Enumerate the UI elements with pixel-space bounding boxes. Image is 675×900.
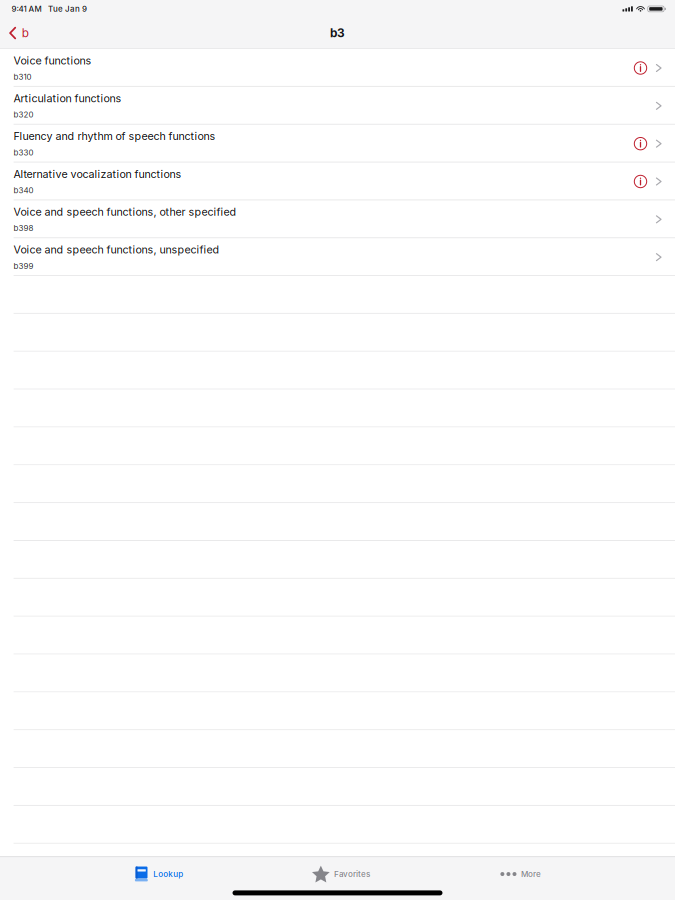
staticText: b3 (330, 26, 345, 40)
button[interactable]: Lookup (135, 866, 183, 881)
staticText: More (521, 869, 541, 879)
staticText: Articulation functions (14, 92, 122, 105)
button[interactable]: More (500, 869, 541, 879)
button[interactable]: Voice functions (0, 49, 675, 87)
staticText: b399 (14, 261, 34, 271)
button[interactable]: More information about Fluency and rhyth… (634, 136, 647, 150)
button[interactable]: b (0, 18, 37, 48)
button[interactable]: More information about Voice functions (634, 61, 647, 74)
staticText: b330 (14, 148, 34, 157)
staticText: Favorites (334, 869, 370, 879)
staticText: Voice functions (14, 54, 92, 67)
button[interactable]: Favorites (312, 866, 370, 882)
staticText: Lookup (153, 869, 183, 879)
staticText: b340 (14, 185, 34, 195)
staticText: Fluency and rhythm of speech functions (14, 130, 216, 143)
button[interactable]: Alternative vocalization functions (0, 163, 675, 200)
staticText: b310 (14, 72, 32, 82)
button[interactable]: Fluency and rhythm of speech functions (0, 125, 675, 163)
staticText: b (22, 26, 29, 40)
button[interactable]: Voice and speech functions, other specif… (0, 200, 675, 238)
button[interactable]: Voice and speech functions, unspecified (0, 238, 675, 276)
staticText: b320 (14, 110, 34, 119)
staticText: 9:41 AM (11, 4, 41, 14)
staticText: Voice and speech functions, other specif… (14, 205, 237, 218)
staticText: b398 (14, 223, 34, 233)
staticText: Alternative vocalization functions (14, 168, 182, 180)
button[interactable]: More information about Alternative vocal… (634, 174, 647, 188)
button[interactable]: Articulation functions (0, 87, 675, 125)
staticText: Voice and speech functions, unspecified (14, 243, 220, 256)
staticText: Tue Jan 9 (48, 4, 87, 14)
